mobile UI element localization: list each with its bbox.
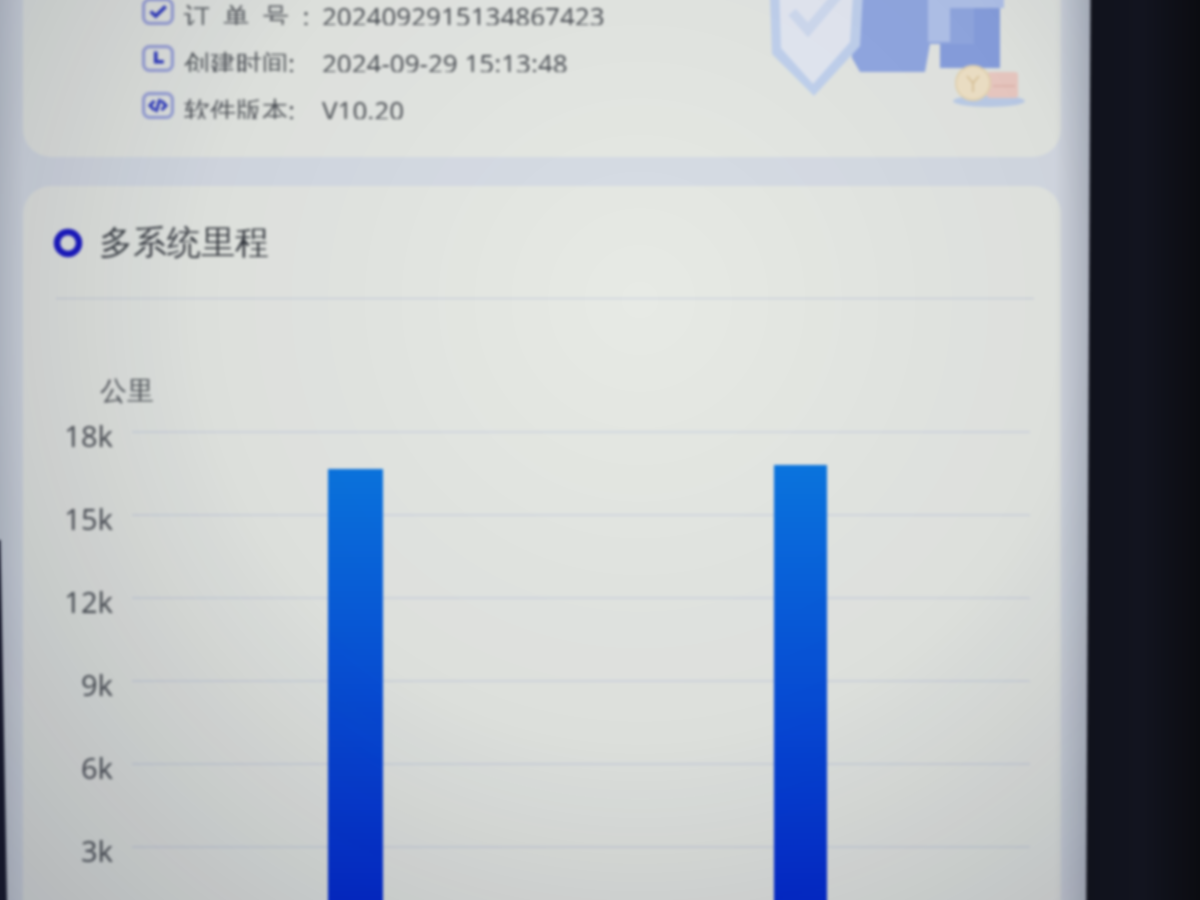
staticText: V10.20 — [322, 92, 405, 119]
staticText: 订单号: — [184, 0, 322, 25]
staticText: 6k — [43, 748, 113, 787]
staticText: 公里 — [100, 374, 154, 408]
button[interactable]: 多系统里程 — [53, 221, 269, 264]
other: Software version — [142, 92, 174, 119]
staticText: 18k — [43, 416, 113, 455]
staticText: 3k — [43, 831, 113, 870]
other: Order number — [142, 0, 174, 25]
staticText: 多系统里程 — [99, 221, 269, 264]
staticText: 创建时间: — [184, 45, 295, 72]
other: Created time — [142, 45, 174, 72]
button[interactable]: Order number — [23, 0, 1061, 157]
staticText: 软件版本: — [184, 92, 295, 119]
staticText: 9k — [43, 665, 113, 704]
staticText: 2024-09-29 15:13:48 — [322, 45, 568, 72]
staticText: 15k — [43, 499, 113, 538]
staticText: 2024092915134867423 — [322, 0, 605, 25]
staticText: 12k — [43, 582, 113, 621]
